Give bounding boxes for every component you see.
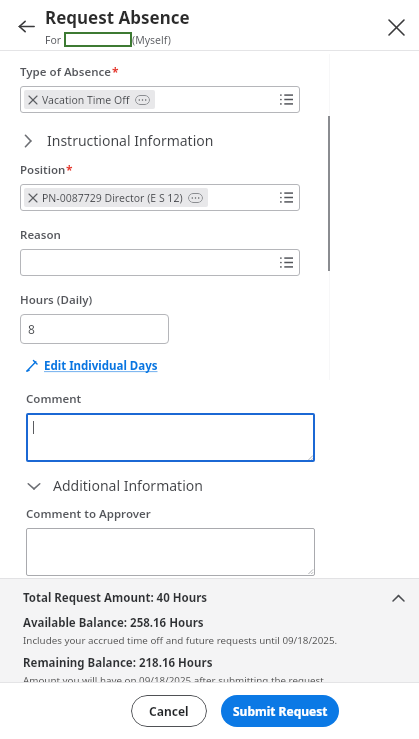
- staticText: Reason: [20, 227, 61, 243]
- staticText: Cancel: [149, 703, 189, 719]
- button[interactable]: Submit Request: [221, 695, 339, 727]
- button[interactable]: Edit Individual Days: [26, 358, 158, 374]
- button[interactable]: [26, 528, 315, 576]
- staticText: 8: [28, 321, 35, 337]
- staticText: Position: [20, 162, 66, 178]
- staticText: (Myself): [132, 33, 171, 47]
- button[interactable]: Additional Information: [26, 476, 419, 495]
- staticText: Total Request Amount: 40 Hours: [23, 590, 208, 606]
- button[interactable]: [26, 413, 315, 462]
- staticText: For: [45, 33, 64, 47]
- button[interactable]: Vacation Time Off: [20, 86, 300, 113]
- staticText: Submit Request: [233, 703, 328, 719]
- staticText: Comment: [26, 391, 82, 407]
- other: Collapse summary: [389, 589, 407, 607]
- button[interactable]: [20, 249, 300, 276]
- button[interactable]: 8: [20, 314, 169, 344]
- button[interactable]: Total Request Amount: 40 Hours: [23, 589, 407, 607]
- staticText: Remaining Balance: 218.16 Hours: [23, 655, 213, 671]
- staticText: Instructional Information: [47, 131, 214, 150]
- staticText: Hours (Daily): [20, 292, 93, 308]
- staticText: Comment to Approver: [26, 506, 151, 522]
- staticText: Amount you will have on 09/18/2025 after…: [23, 674, 327, 682]
- staticText: *: [66, 162, 73, 178]
- staticText: *: [112, 64, 119, 80]
- staticText: Includes your accrued time off and futur…: [23, 634, 338, 647]
- button[interactable]: Instructional Information: [20, 131, 419, 150]
- staticText: Edit Individual Days: [44, 358, 158, 374]
- staticText: Type of Absence: [20, 64, 112, 80]
- staticText: Available Balance: 258.16 Hours: [23, 615, 204, 631]
- button[interactable]: Back: [12, 12, 40, 40]
- staticText: Request Absence: [45, 6, 190, 29]
- button[interactable]: Cancel: [131, 695, 207, 727]
- staticText: PN-0087729 Director (E S 12): [42, 191, 183, 205]
- staticText: Additional Information: [53, 476, 203, 495]
- button[interactable]: Close: [381, 12, 411, 42]
- button[interactable]: PN-0087729 Director (E S 12): [20, 184, 300, 211]
- staticText: Vacation Time Off: [42, 93, 130, 107]
